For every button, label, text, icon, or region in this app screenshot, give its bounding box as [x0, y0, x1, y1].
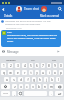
staticText: x: [20, 85, 22, 89]
staticText: j: [46, 78, 47, 82]
button[interactable]: Mark as unread: [40, 14, 60, 18]
staticText: 9: [54, 64, 56, 68]
button[interactable]: .: [49, 91, 53, 96]
button[interactable]: 6: [35, 63, 39, 68]
staticText: f: [27, 78, 29, 82]
button[interactable]: d: [18, 77, 23, 82]
button[interactable]: [55, 84, 63, 89]
staticText: a: [6, 78, 8, 82]
staticText: m: [50, 85, 53, 89]
button[interactable]: 5: [29, 63, 33, 68]
staticText: 1: [3, 64, 5, 68]
button[interactable]: 1: [1, 63, 6, 68]
staticText: 4: [24, 64, 26, 68]
button[interactable]: l: [56, 77, 60, 82]
staticText: c: [26, 85, 28, 89]
staticText: d: [20, 78, 22, 82]
button[interactable]: b: [37, 84, 41, 89]
button[interactable]: c: [25, 84, 29, 89]
button[interactable]: e: [15, 70, 20, 75]
button[interactable]: Send: [55, 48, 62, 55]
button[interactable]: I'm: [22, 56, 43, 62]
staticText: 5: [30, 64, 32, 68]
button[interactable]: y: [35, 70, 39, 75]
staticText: t: [30, 71, 32, 75]
button[interactable]: m: [49, 84, 53, 89]
staticText: 6: [36, 64, 38, 68]
button[interactable]: 9: [53, 63, 57, 68]
button[interactable]: q: [1, 70, 6, 75]
button[interactable]: [55, 91, 63, 96]
button[interactable]: a: [4, 77, 9, 82]
staticText: i: [49, 71, 50, 75]
staticText: l: [58, 78, 59, 82]
staticText: ,: [14, 92, 15, 96]
button[interactable]: h: [38, 77, 42, 82]
button[interactable]: 4: [22, 63, 27, 68]
staticText: w: [9, 71, 12, 75]
button[interactable]: k: [50, 77, 54, 82]
staticText: I'm: [31, 58, 35, 61]
button[interactable]: Details: [4, 14, 13, 18]
button[interactable]: g: [32, 77, 36, 82]
button[interactable]: 0: [59, 63, 63, 68]
staticText: n: [44, 85, 46, 89]
button[interactable]: p: [59, 70, 63, 75]
staticText: 7: [42, 64, 44, 68]
staticText: o: [54, 71, 56, 75]
button[interactable]: Search: [56, 5, 64, 13]
button[interactable]: u: [41, 70, 45, 75]
button[interactable]: i: [47, 70, 51, 75]
staticText: Sara: [7, 31, 12, 34]
button[interactable]: ,: [12, 91, 16, 96]
staticText: y: [36, 71, 38, 75]
staticText: .: [51, 92, 52, 96]
staticText: Messages are end-to-end encrypted. No on…: [5, 20, 58, 26]
staticText: mediate: [6, 58, 16, 61]
button[interactable]: 7: [41, 63, 45, 68]
button[interactable]: mediate: [0, 56, 22, 62]
other: Enter: [55, 91, 63, 96]
staticText: Changed my mind, you should probably tak…: [7, 34, 60, 43]
button[interactable]: 8: [47, 63, 51, 68]
other: Backspace: [55, 84, 63, 89]
staticText: the: [52, 58, 56, 61]
staticText: k: [51, 78, 53, 82]
other: Emoji: [18, 91, 22, 96]
button[interactable]: Camera: [1, 49, 6, 54]
button[interactable]: Back: [0, 6, 7, 13]
button[interactable]: s: [11, 77, 16, 82]
staticText: 8: [48, 64, 50, 68]
button[interactable]: w: [8, 70, 13, 75]
button[interactable]: Sara: [1, 30, 61, 47]
staticText: 0: [60, 64, 62, 68]
button[interactable]: t: [29, 70, 33, 75]
button[interactable]: j: [44, 77, 48, 82]
button[interactable]: z: [12, 84, 17, 89]
button[interactable]: [18, 91, 22, 96]
other: Shift: [1, 84, 10, 89]
button[interactable]: v: [31, 84, 35, 89]
staticText: g: [33, 78, 35, 82]
staticText: Team chat: [24, 7, 39, 11]
button[interactable]: 2: [8, 63, 13, 68]
staticText: q: [3, 71, 5, 75]
staticText: u: [42, 71, 44, 75]
button[interactable]: [1, 84, 10, 89]
button[interactable]: o: [53, 70, 57, 75]
button[interactable]: r: [22, 70, 27, 75]
button[interactable]: x: [19, 84, 23, 89]
staticText: h: [39, 78, 41, 82]
button[interactable]: n: [43, 84, 47, 89]
button[interactable]: ?123: [1, 91, 10, 96]
staticText: s: [13, 78, 15, 82]
staticText: 2: [10, 64, 12, 68]
button[interactable]: the: [43, 56, 64, 62]
staticText: ?123: [3, 92, 8, 95]
button[interactable]: 3: [15, 63, 20, 68]
button[interactable]: f: [25, 77, 30, 82]
staticText: e: [17, 71, 19, 75]
staticText: v: [32, 85, 34, 89]
staticText: b: [38, 85, 40, 89]
